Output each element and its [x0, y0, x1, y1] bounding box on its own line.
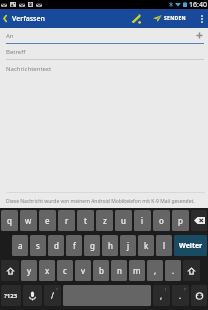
- staticText: g: [90, 240, 95, 251]
- button[interactable]: Verfassen: [3, 9, 45, 28]
- button[interactable]: Weitere Optionen: [195, 9, 208, 28]
- button[interactable]: o: [153, 210, 170, 231]
- button[interactable]: Umschalttaste: [1, 260, 19, 281]
- staticText: t: [84, 215, 87, 226]
- staticText: h: [108, 240, 113, 251]
- button[interactable]: w: [20, 210, 37, 231]
- staticText: !: [165, 287, 167, 292]
- button[interactable]: a: [12, 235, 28, 256]
- staticText: ?123: [4, 292, 18, 300]
- button[interactable]: Umschalttaste: [183, 260, 200, 281]
- staticText: Verfassen: [12, 14, 45, 24]
- button[interactable]: l: [156, 235, 172, 256]
- button[interactable]: .: [172, 285, 189, 306]
- staticText: Nachrichtentext: [6, 65, 52, 73]
- staticText: a: [18, 240, 23, 251]
- button[interactable]: Weiter: [174, 235, 207, 256]
- staticText: n: [117, 265, 122, 276]
- staticText: s: [36, 240, 40, 251]
- button[interactable]: /: [44, 285, 61, 306]
- staticText: v: [81, 265, 86, 276]
- staticText: An: [6, 32, 14, 40]
- button[interactable]: u: [115, 210, 132, 231]
- button[interactable]: b: [93, 260, 109, 281]
- button[interactable]: t: [77, 210, 94, 231]
- button[interactable]: f: [66, 235, 82, 256]
- button[interactable]: i: [134, 210, 151, 231]
- staticText: l: [163, 240, 166, 251]
- staticText: °: [56, 287, 58, 292]
- staticText: w: [25, 215, 32, 226]
- button[interactable]: m: [129, 260, 145, 281]
- staticText: o: [159, 215, 164, 226]
- button[interactable]: p: [172, 210, 189, 231]
- staticText: z: [103, 215, 107, 226]
- button[interactable]: Betreff: [0, 44, 208, 59]
- staticText: .: [172, 265, 175, 276]
- staticText: y: [27, 265, 32, 276]
- button[interactable]: j: [120, 235, 136, 256]
- staticText: ,: [154, 265, 157, 276]
- button[interactable]: Emoji: [191, 285, 207, 306]
- staticText: ?: [184, 287, 186, 292]
- button[interactable]: e: [39, 210, 56, 231]
- button[interactable]: c: [57, 260, 73, 281]
- button[interactable]: x: [39, 260, 55, 281]
- staticText: ,: [160, 290, 163, 301]
- button[interactable]: SENDEN: [153, 9, 186, 28]
- button[interactable]: q: [1, 210, 18, 231]
- staticText: Weiter: [179, 241, 203, 251]
- staticText: i: [141, 215, 144, 226]
- button[interactable]: r: [58, 210, 75, 231]
- staticText: /: [51, 290, 54, 301]
- staticText: d: [54, 240, 59, 251]
- staticText: c: [63, 265, 67, 276]
- button[interactable]: Anhang hinzufügen: [128, 9, 144, 28]
- staticText: SENDEN: [164, 15, 186, 22]
- staticText: j: [127, 240, 130, 251]
- button[interactable]: ,: [147, 260, 163, 281]
- staticText: r: [65, 215, 69, 226]
- staticText: f: [73, 240, 76, 251]
- staticText: .: [179, 290, 182, 301]
- staticText: x: [45, 265, 50, 276]
- button[interactable]: Empfänger hinzufügen: [195, 31, 204, 40]
- staticText: e: [45, 215, 50, 226]
- button[interactable]: d: [48, 235, 64, 256]
- button[interactable]: h: [102, 235, 118, 256]
- staticText: u: [121, 215, 126, 226]
- button[interactable]: v: [75, 260, 91, 281]
- button[interactable]: k: [138, 235, 154, 256]
- button[interactable]: Löschen: [191, 210, 207, 231]
- button[interactable]: z: [96, 210, 113, 231]
- button[interactable]: s: [30, 235, 46, 256]
- staticText: p: [178, 215, 183, 226]
- staticText: Diese Nachricht wurde von meinem Android…: [6, 198, 195, 205]
- button[interactable]: y: [21, 260, 37, 281]
- button[interactable]: n: [111, 260, 127, 281]
- staticText: Betreff: [6, 48, 26, 56]
- button[interactable]: ,: [153, 285, 170, 306]
- staticText: k: [144, 240, 149, 251]
- staticText: q: [7, 215, 12, 226]
- button[interactable]: g: [84, 235, 100, 256]
- button[interactable]: ?123: [1, 285, 21, 306]
- staticText: b: [99, 265, 104, 276]
- button[interactable]: Nachrichtentext: [0, 60, 208, 192]
- button[interactable]: Spracheingabe: [23, 285, 42, 306]
- button[interactable]: An: [0, 28, 208, 43]
- staticText: m: [133, 265, 141, 276]
- staticText: 16:40: [189, 0, 207, 9]
- button[interactable]: .: [165, 260, 181, 281]
